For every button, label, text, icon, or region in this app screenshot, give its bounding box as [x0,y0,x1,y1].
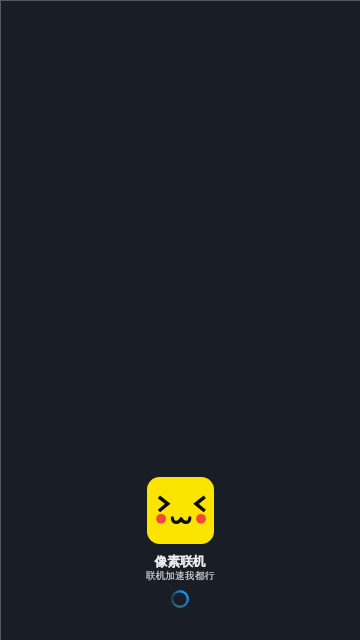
other: Loading [171,590,189,608]
staticText: 像素联机 [0,554,360,570]
staticText: 联机加速我都行 [0,570,360,582]
button[interactable]: 像素联机 app icon [147,477,214,544]
